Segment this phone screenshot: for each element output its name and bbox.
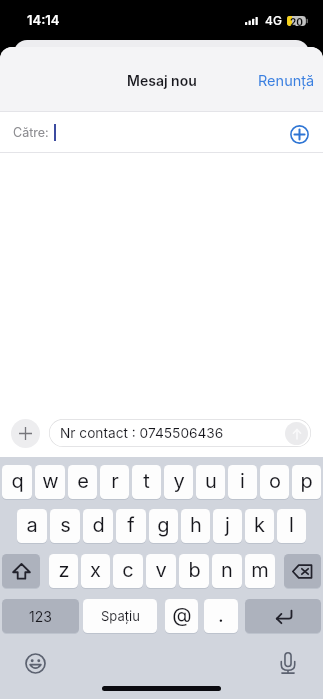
staticText: i xyxy=(240,469,245,493)
staticText: Nr contact : 0745506436 xyxy=(60,425,224,442)
button[interactable]: o xyxy=(260,465,289,499)
staticText: 20 xyxy=(290,16,304,26)
button[interactable]: e xyxy=(68,465,97,499)
button[interactable]: v xyxy=(146,554,176,588)
button[interactable]: More options xyxy=(11,419,40,448)
staticText: s xyxy=(60,513,71,537)
staticText: Spațiu xyxy=(101,608,140,624)
button[interactable]: Nr contact : 0745506436 xyxy=(49,419,311,447)
staticText: p xyxy=(300,469,313,493)
button[interactable]: Backspace xyxy=(284,554,321,588)
button[interactable]: h xyxy=(181,509,210,543)
button[interactable]: n xyxy=(212,554,242,588)
button[interactable]: w xyxy=(35,465,65,499)
staticText: n xyxy=(221,558,233,582)
button[interactable]: @ xyxy=(165,599,198,633)
staticText: c xyxy=(122,558,134,582)
button[interactable]: f xyxy=(116,509,146,543)
staticText: 123 xyxy=(29,608,52,625)
staticText: a xyxy=(26,513,38,537)
staticText: g xyxy=(157,513,170,537)
staticText: e xyxy=(77,469,89,493)
staticText: y xyxy=(173,469,185,493)
staticText: q xyxy=(11,469,24,493)
button[interactable]: y xyxy=(164,465,193,499)
staticText: @ xyxy=(172,603,192,627)
button[interactable]: Shift xyxy=(2,554,40,588)
staticText: x xyxy=(90,558,101,582)
staticText: d xyxy=(92,513,105,537)
button[interactable]: p xyxy=(292,465,321,499)
button[interactable]: Spațiu xyxy=(83,599,157,633)
button[interactable]: Emoji xyxy=(22,652,48,674)
button[interactable]: 123 xyxy=(2,599,79,633)
button[interactable]: Renunță xyxy=(246,64,323,98)
staticText: h xyxy=(190,513,202,537)
staticText: Către: xyxy=(13,125,49,140)
button[interactable]: u xyxy=(196,465,225,499)
button[interactable]: r xyxy=(100,465,129,499)
button[interactable]: j xyxy=(213,509,242,543)
staticText: Mesaj nou xyxy=(127,72,197,89)
staticText: 4G xyxy=(265,13,282,28)
staticText: b xyxy=(188,558,201,582)
staticText: o xyxy=(269,469,281,493)
staticText: j xyxy=(225,513,230,537)
staticText: t xyxy=(143,469,150,493)
button[interactable]: a xyxy=(17,509,47,543)
staticText: w xyxy=(42,469,59,493)
staticText: k xyxy=(254,513,265,537)
staticText: 14:14 xyxy=(27,12,60,28)
staticText: u xyxy=(205,469,217,493)
staticText: m xyxy=(251,558,269,582)
staticText: v xyxy=(155,558,167,582)
staticText: f xyxy=(127,513,135,537)
staticText: z xyxy=(58,558,70,582)
button[interactable]: l xyxy=(277,509,306,543)
staticText: . xyxy=(218,603,224,627)
button[interactable]: Add contact xyxy=(284,119,314,149)
button[interactable]: g xyxy=(149,509,178,543)
button[interactable]: Send xyxy=(285,422,308,445)
button[interactable]: s xyxy=(50,509,80,543)
button[interactable]: . xyxy=(204,599,238,633)
button[interactable]: b xyxy=(179,554,209,588)
button[interactable]: m xyxy=(245,554,275,588)
button[interactable]: Dictate xyxy=(275,652,301,674)
button[interactable]: x xyxy=(81,554,110,588)
button[interactable]: q xyxy=(2,465,32,499)
staticText: r xyxy=(111,469,119,493)
button[interactable]: k xyxy=(245,509,274,543)
button[interactable]: c xyxy=(113,554,143,588)
button[interactable]: t xyxy=(132,465,161,499)
staticText: Renunță xyxy=(258,72,315,90)
button[interactable]: d xyxy=(83,509,113,543)
button[interactable]: Return xyxy=(245,599,321,633)
button[interactable]: z xyxy=(49,554,78,588)
button[interactable]: i xyxy=(228,465,257,499)
staticText: l xyxy=(289,513,294,537)
